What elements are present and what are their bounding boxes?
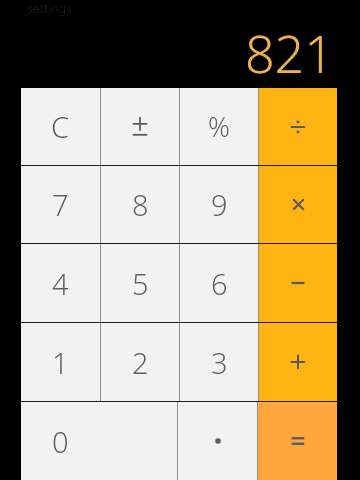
- button[interactable]: 8: [101, 166, 179, 243]
- button[interactable]: 9: [180, 166, 258, 243]
- button[interactable]: 1: [21, 323, 100, 401]
- button[interactable]: Subtract: [259, 244, 337, 322]
- staticText: 9: [211, 185, 228, 224]
- staticText: 6: [211, 264, 228, 303]
- button[interactable]: Decimal point: [178, 402, 257, 480]
- button[interactable]: 5: [101, 244, 179, 322]
- staticText: 2: [132, 343, 149, 382]
- button[interactable]: 3: [180, 323, 258, 401]
- staticText: C: [51, 107, 70, 146]
- staticText: 4: [52, 264, 69, 303]
- button[interactable]: Multiply: [259, 166, 337, 243]
- button[interactable]: 2: [101, 323, 179, 401]
- staticText: 3: [211, 343, 228, 382]
- button[interactable]: Divide: [259, 88, 337, 165]
- button[interactable]: settings: [27, 0, 72, 16]
- button[interactable]: Toggle sign: [101, 88, 179, 165]
- staticText: 1: [52, 343, 69, 382]
- staticText: 0: [52, 422, 69, 461]
- staticText: 7: [52, 185, 69, 224]
- button[interactable]: %: [180, 88, 258, 165]
- staticText: %: [208, 108, 230, 145]
- button[interactable]: C: [21, 88, 100, 165]
- button[interactable]: Add: [259, 323, 337, 401]
- staticText: 5: [132, 264, 149, 303]
- button[interactable]: 0: [21, 402, 177, 480]
- button[interactable]: 6: [180, 244, 258, 322]
- button[interactable]: Equals: [258, 402, 337, 480]
- button[interactable]: 7: [21, 166, 100, 243]
- staticText: settings: [27, 0, 72, 16]
- staticText: 821: [244, 17, 334, 88]
- button[interactable]: 4: [21, 244, 100, 322]
- staticText: 8: [132, 185, 149, 224]
